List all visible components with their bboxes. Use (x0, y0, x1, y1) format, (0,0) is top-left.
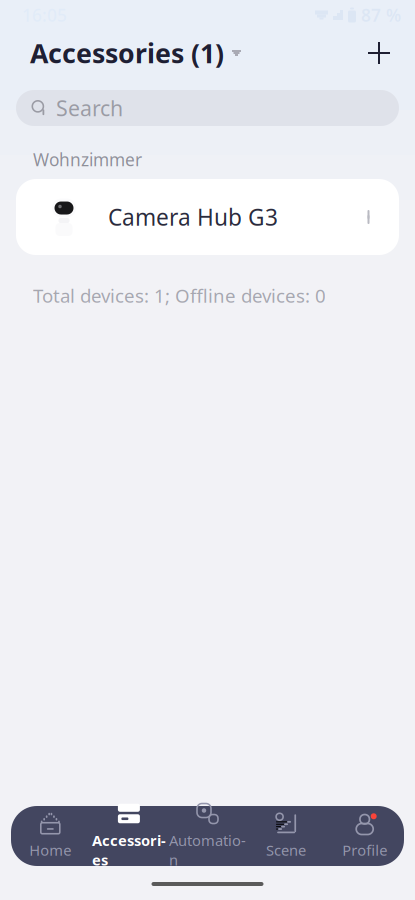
button[interactable]: Search (16, 90, 399, 126)
button[interactable]: Profile (325, 806, 404, 866)
staticText: Home (29, 840, 71, 860)
button[interactable]: Automation (168, 806, 247, 866)
staticText: Accessories (1) (30, 35, 224, 71)
button[interactable]: Accessories (90, 806, 168, 866)
button[interactable]: Camera Hub G3 (16, 179, 399, 255)
staticText: Wohnzimmer (33, 148, 142, 171)
staticText: 87 % (361, 3, 401, 26)
button[interactable]: Accessories (1) (0, 27, 241, 79)
staticText: Automation (169, 830, 246, 869)
staticText: Profile (342, 840, 387, 860)
button[interactable]: Home (11, 806, 90, 866)
button[interactable]: Add accessory (357, 31, 401, 75)
button[interactable]: Scene (247, 806, 325, 866)
staticText: Total devices: 1; Offline devices: 0 (33, 283, 326, 308)
staticText: Scene (266, 840, 306, 860)
staticText: Search (56, 94, 123, 122)
staticText: Camera Hub G3 (108, 202, 278, 232)
staticText: Accessories (92, 830, 166, 869)
